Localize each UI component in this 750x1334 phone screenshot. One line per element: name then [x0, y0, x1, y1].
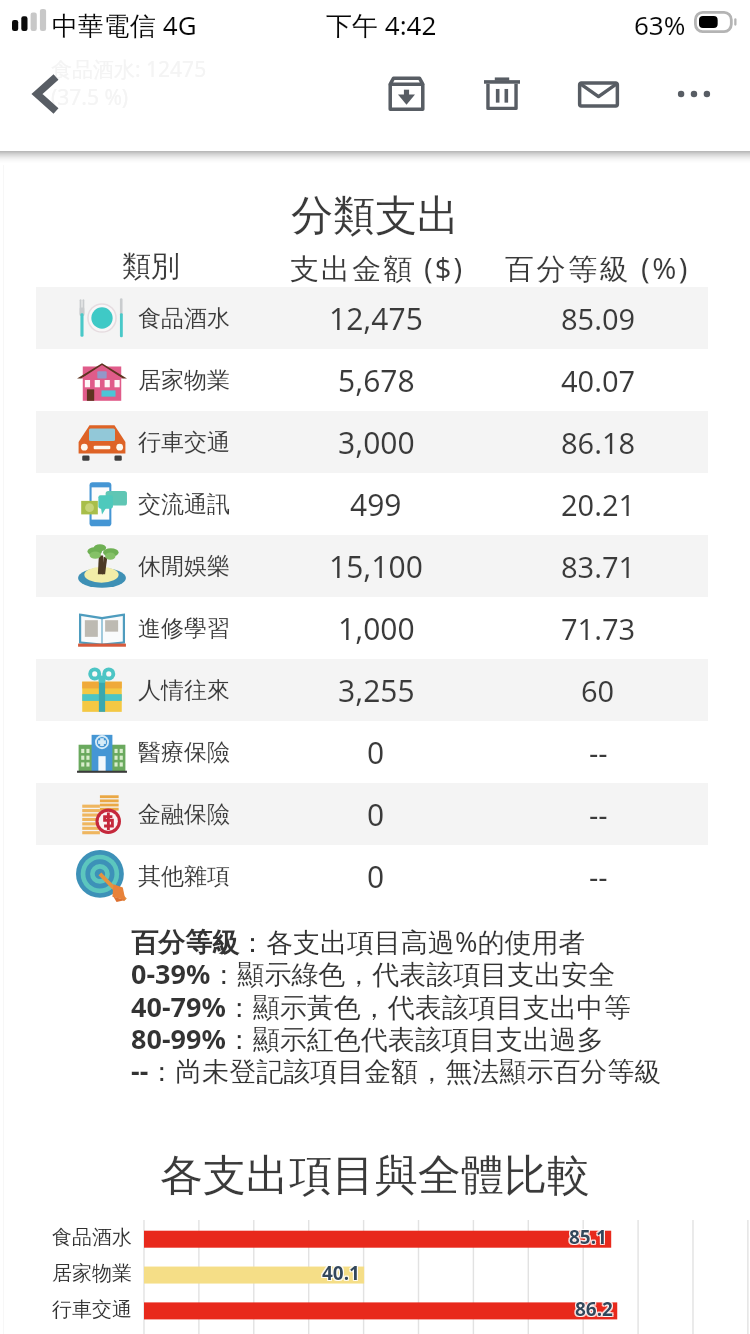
staticText: 食品酒水	[52, 1225, 132, 1250]
staticText: 3,255	[338, 670, 415, 711]
staticText: 15,100	[329, 546, 423, 587]
staticText: 85.1	[568, 1223, 606, 1249]
staticText: 40.1	[322, 1260, 360, 1286]
staticText: 各支出項目與全體比較	[0, 1149, 750, 1203]
staticText: 人情往來	[138, 676, 230, 705]
staticText: 食品酒水	[138, 304, 230, 333]
button[interactable]: Back	[13, 50, 79, 138]
staticText: 0	[367, 794, 385, 835]
button[interactable]: 行車交通	[36, 411, 708, 473]
staticText: 中華電信 4G	[52, 7, 197, 43]
staticText: 83.71	[561, 547, 636, 586]
staticText: 其他雜項	[138, 862, 230, 891]
staticText: 40.07	[561, 361, 636, 400]
staticText: 下午 4:42	[326, 7, 437, 43]
staticText: 12,475	[329, 298, 423, 339]
staticText: 85.1	[569, 1224, 607, 1250]
staticText: 百分等級 (%)	[505, 248, 691, 288]
button[interactable]: Mail	[558, 48, 638, 140]
staticText: 5,678	[338, 360, 415, 401]
staticText: 499	[350, 484, 402, 525]
staticText: 63%	[634, 7, 686, 42]
staticText: 86.18	[561, 423, 636, 462]
staticText: 71.73	[561, 609, 636, 648]
staticText: 居家物業	[52, 1261, 132, 1286]
staticText: 86.2	[576, 1295, 614, 1321]
staticText: --	[589, 733, 608, 772]
staticText: 86.2	[576, 1297, 614, 1323]
staticText: 醫療保險	[138, 738, 230, 767]
staticText: 80-99%：顯示紅色代表該項目支出過多	[131, 1020, 604, 1057]
staticText: --	[589, 857, 608, 896]
staticText: 86.2	[574, 1297, 612, 1323]
staticText: 86.2	[575, 1296, 613, 1322]
button[interactable]: 金融保險	[36, 783, 708, 845]
staticText: 食品酒水: 12475	[51, 55, 207, 84]
staticText: --	[589, 795, 608, 834]
staticText: 交流通訊	[138, 490, 230, 519]
staticText: 支出金額 ($)	[290, 248, 465, 288]
staticText: 40.1	[321, 1259, 359, 1285]
staticText: 40-79%：顯示黃色，代表該項目支出中等	[131, 988, 631, 1025]
button[interactable]: 交流通訊	[36, 473, 708, 535]
staticText: 類別	[122, 248, 180, 285]
staticText: 85.1	[570, 1225, 608, 1251]
button[interactable]: 其他雜項	[36, 845, 708, 907]
button[interactable]: 人情往來	[36, 659, 708, 721]
staticText: 85.09	[561, 299, 636, 338]
staticText: 86.2	[574, 1295, 612, 1321]
button[interactable]: 進修學習	[36, 597, 708, 659]
staticText: 1,000	[338, 608, 415, 649]
staticText: 20.21	[561, 485, 636, 524]
staticText: 85.1	[570, 1223, 608, 1249]
button[interactable]: Archive	[366, 48, 446, 140]
staticText: 40.1	[321, 1261, 359, 1287]
button[interactable]: 食品酒水	[36, 287, 708, 349]
staticText: 百分等級：各支出項目高過%的使用者	[131, 923, 586, 960]
staticText: 60	[581, 671, 615, 710]
staticText: 休閒娛樂	[138, 552, 230, 581]
staticText: 0	[367, 856, 385, 897]
staticText: 金融保險	[138, 800, 230, 829]
staticText: 分類支出	[0, 190, 750, 243]
button[interactable]: More options	[654, 48, 734, 140]
staticText: 行車交通	[138, 428, 230, 457]
staticText: 進修學習	[138, 614, 230, 643]
staticText: 0-39%：顯示綠色，代表該項目支出安全	[131, 955, 616, 992]
staticText: 85.1	[568, 1225, 606, 1251]
staticText: 行車交通	[52, 1297, 132, 1322]
staticText: (37.5 %)	[51, 83, 129, 112]
staticText: --：尚未登記該項目金額，無法顯示百分等級	[131, 1052, 662, 1089]
staticText: 居家物業	[138, 366, 230, 395]
staticText: 0	[367, 732, 385, 773]
staticText: 3,000	[338, 422, 415, 463]
button[interactable]: Delete	[462, 48, 542, 140]
staticText: 40.1	[323, 1261, 361, 1287]
button[interactable]: 休閒娛樂	[36, 535, 708, 597]
button[interactable]: 居家物業	[36, 349, 708, 411]
staticText: 40.1	[323, 1259, 361, 1285]
button[interactable]: 醫療保險	[36, 721, 708, 783]
